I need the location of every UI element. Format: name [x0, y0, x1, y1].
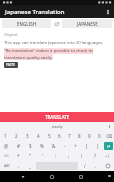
staticText: 0: [98, 133, 101, 139]
staticText: ABC: [4, 164, 11, 168]
staticText: :: [55, 153, 57, 159]
button[interactable]: /: [79, 161, 90, 171]
button[interactable]: 2: [12, 132, 21, 140]
button[interactable]: 7: [65, 132, 73, 140]
staticText: !: [81, 153, 83, 159]
button[interactable]: Emoji: [101, 161, 114, 171]
button[interactable]: 0: [95, 132, 103, 140]
staticText: PASTE: [6, 63, 16, 67]
staticText: 6: [58, 133, 61, 139]
staticText: ENGLISH: [17, 21, 37, 27]
staticText: 5: [48, 133, 51, 139]
staticText: *: [17, 153, 20, 159]
staticText: @: [4, 143, 9, 149]
staticText: =\<: [4, 154, 9, 158]
staticText: Japanese Translation: [5, 8, 65, 16]
button[interactable]: *: [13, 152, 23, 160]
staticText: 2: [15, 133, 18, 139]
staticText: /: [84, 163, 86, 169]
button[interactable]: More suggestions: [104, 122, 114, 131]
staticText: TRANSLATE: [45, 114, 70, 120]
button[interactable]: @: [1, 142, 11, 150]
staticText: ': [42, 153, 44, 159]
staticText: #: [17, 143, 20, 149]
button[interactable]: ;: [63, 152, 74, 160]
button[interactable]: 6: [55, 132, 63, 140]
button[interactable]: Back: [17, 171, 28, 182]
button[interactable]: Home: [46, 171, 57, 182]
button[interactable]: 1: [1, 132, 10, 140]
button[interactable]: 5: [45, 132, 53, 140]
staticText: ,: [18, 163, 20, 169]
button[interactable]: Swap languages: [51, 18, 62, 29]
staticText: -: [64, 143, 66, 149]
staticText: &: [52, 143, 56, 149]
staticText: .: [95, 163, 97, 169]
staticText: 9: [88, 133, 91, 139]
button[interactable]: #: [13, 142, 23, 150]
staticText: 4: [37, 133, 40, 139]
button[interactable]: (: [82, 142, 91, 150]
button[interactable]: ⌫: [105, 132, 113, 140]
staticText: ?: [94, 153, 96, 159]
staticText: 1: [4, 133, 7, 139]
button[interactable]: TRANSLATE: [0, 112, 114, 122]
button[interactable]: ": [25, 152, 35, 160]
button[interactable]: ,: [14, 161, 24, 171]
button[interactable]: ↵: [104, 142, 113, 150]
staticText: %: [40, 143, 44, 149]
staticText: 8: [78, 133, 81, 139]
button[interactable]: ?: [89, 152, 100, 160]
staticText: 3: [26, 133, 29, 139]
button[interactable]: 8: [75, 132, 83, 140]
button[interactable]: 3: [23, 132, 32, 140]
button[interactable]: $: [25, 142, 35, 150]
button[interactable]: !: [76, 152, 87, 160]
button[interactable]: ): [93, 142, 102, 150]
button[interactable]: _: [24, 161, 35, 171]
staticText: _: [29, 163, 31, 169]
staticText: $: [29, 143, 32, 149]
staticText: (: [86, 143, 88, 149]
button[interactable]: :: [50, 152, 61, 160]
staticText: JAPANESE: [77, 21, 98, 27]
staticText: ↵: [107, 144, 111, 149]
button[interactable]: PASTE: [6, 63, 16, 67]
button[interactable]: -: [60, 142, 69, 150]
button[interactable]: =\<: [1, 152, 11, 160]
staticText: 7: [68, 133, 71, 139]
button[interactable]: ': [37, 152, 48, 160]
staticText: Original: [4, 32, 18, 37]
button[interactable]: Keyboard: [104, 171, 114, 182]
button[interactable]: 9: [85, 132, 93, 140]
staticText: ): [97, 143, 99, 149]
staticText: "Re-translation" makes it possible to ch…: [4, 48, 110, 60]
button[interactable]: JAPANESE: [62, 19, 112, 28]
staticText: ;: [68, 153, 70, 159]
staticText: ": [29, 153, 31, 159]
button[interactable]: ENGLISH: [2, 19, 51, 28]
button[interactable]: Recents: [75, 171, 86, 182]
button[interactable]: ABC: [0, 161, 14, 171]
button[interactable]: easily: [52, 124, 63, 129]
staticText: ⌫: [106, 134, 113, 139]
button[interactable]: 4: [34, 132, 43, 140]
staticText: This app can translate Japanese into 30 …: [4, 40, 104, 46]
button[interactable]: %: [37, 142, 47, 150]
button[interactable]: →|: [102, 152, 113, 160]
button[interactable]: More options: [102, 5, 114, 18]
staticText: →|: [105, 154, 110, 158]
button[interactable]: +: [71, 142, 80, 150]
button[interactable]: .: [90, 161, 101, 171]
staticText: +: [74, 143, 77, 149]
button[interactable]: &: [49, 142, 58, 150]
